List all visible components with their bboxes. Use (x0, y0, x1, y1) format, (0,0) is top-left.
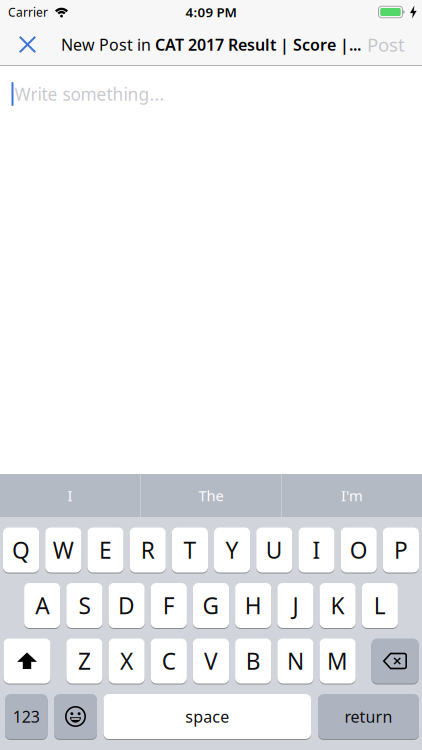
staticText: O (350, 535, 368, 565)
button[interactable]: H (235, 583, 271, 628)
button[interactable]: F (151, 583, 187, 628)
button[interactable]: The (141, 474, 281, 517)
button[interactable]: N (277, 638, 313, 683)
staticText: space (185, 706, 229, 727)
staticText: M (327, 646, 348, 676)
staticText: J (292, 590, 298, 620)
button[interactable]: Y (214, 527, 250, 572)
staticText: X (120, 646, 133, 676)
staticText: Post (367, 32, 405, 57)
button[interactable]: 123 (5, 694, 47, 739)
button[interactable]: X (108, 638, 145, 683)
staticText: N (287, 646, 304, 676)
button[interactable]: K (319, 583, 356, 628)
button[interactable]: return (318, 694, 419, 739)
staticText: Y (226, 535, 239, 565)
button[interactable] (371, 638, 418, 683)
button[interactable]: T (172, 527, 208, 572)
button[interactable]: P (383, 527, 419, 572)
button[interactable]: Q (3, 527, 39, 572)
staticText: L (374, 590, 386, 620)
staticText: I'm (341, 486, 363, 505)
staticText: R (141, 535, 155, 565)
button[interactable]: O (341, 527, 377, 572)
button[interactable]: W (45, 527, 81, 572)
staticText: H (245, 590, 262, 620)
staticText: I (312, 535, 320, 565)
button[interactable]: B (235, 638, 271, 683)
staticText: K (331, 590, 345, 620)
button[interactable]: A (24, 583, 60, 628)
button[interactable]: V (193, 638, 229, 683)
staticText: Q (12, 535, 30, 565)
staticText: W (53, 535, 74, 565)
button[interactable]: L (362, 583, 398, 628)
staticText: E (99, 535, 112, 565)
staticText: Carrier (8, 4, 48, 20)
staticText: I (67, 486, 72, 505)
button[interactable]: D (108, 583, 145, 628)
staticText: 4:09 PM (185, 3, 236, 21)
staticText: return (344, 706, 392, 727)
button[interactable]: I (298, 527, 335, 572)
staticText: F (163, 590, 175, 620)
button[interactable]: space (103, 694, 311, 739)
button[interactable]: G (193, 583, 229, 628)
button[interactable] (54, 694, 97, 739)
staticText: A (35, 590, 49, 620)
button[interactable]: E (87, 527, 124, 572)
button[interactable]: C (151, 638, 187, 683)
staticText: T (183, 535, 196, 565)
button[interactable]: S (66, 583, 102, 628)
staticText: The (198, 486, 223, 505)
button[interactable]: M (319, 638, 356, 683)
staticText: G (202, 590, 219, 620)
staticText: S (78, 590, 90, 620)
staticText: P (394, 535, 408, 565)
staticText: D (118, 590, 135, 620)
button[interactable] (0, 36, 36, 53)
staticText: C (162, 646, 176, 676)
button[interactable]: J (277, 583, 313, 628)
staticText: V (204, 646, 218, 676)
button[interactable] (3, 638, 50, 683)
button[interactable]: R (130, 527, 166, 572)
staticText: Write something... (14, 82, 164, 105)
button[interactable]: U (256, 527, 292, 572)
button[interactable]: Write something... (0, 66, 422, 474)
button[interactable]: Z (66, 638, 102, 683)
staticText: B (246, 646, 261, 676)
button[interactable]: Post (367, 32, 422, 57)
staticText: U (266, 535, 283, 565)
button[interactable]: I'm (282, 474, 422, 517)
staticText: 123 (13, 706, 40, 727)
staticText: New Post in CAT 2017 Result | Score |... (61, 34, 361, 55)
staticText: Z (78, 646, 91, 676)
button[interactable]: I (0, 474, 140, 517)
